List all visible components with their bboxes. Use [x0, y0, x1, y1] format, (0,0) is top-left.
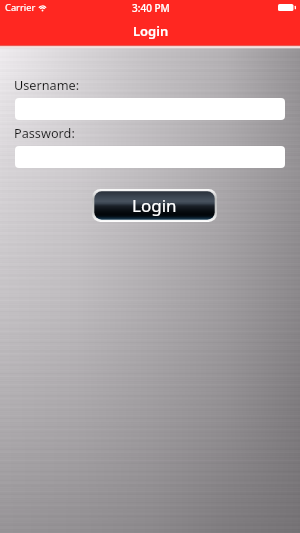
- staticText: Username:: [14, 76, 80, 93]
- other: Battery: [278, 4, 296, 11]
- button[interactable]: [15, 146, 285, 168]
- other: Wifi signal: [38, 3, 47, 12]
- staticText: Password:: [14, 124, 75, 141]
- staticText: 3:40 PM: [132, 1, 170, 15]
- staticText: Carrier: [5, 1, 36, 14]
- staticText: Login: [132, 194, 177, 217]
- staticText: Login: [133, 22, 169, 40]
- button[interactable]: Login: [92, 189, 217, 222]
